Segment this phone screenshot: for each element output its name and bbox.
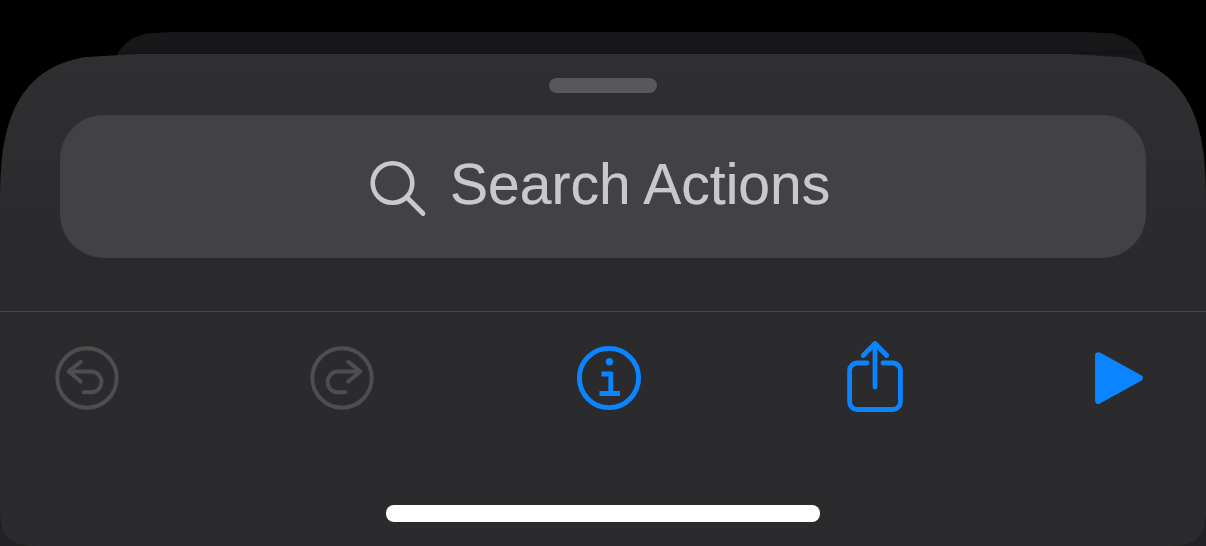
staticText: Search Actions: [450, 152, 831, 216]
button[interactable]: Share: [820, 323, 930, 433]
button[interactable]: Undo: [32, 323, 142, 433]
button[interactable]: Info: [554, 323, 664, 433]
button[interactable]: Play: [1064, 323, 1174, 433]
button[interactable]: Redo: [287, 323, 397, 433]
button[interactable]: Search Actions: [60, 115, 1146, 258]
